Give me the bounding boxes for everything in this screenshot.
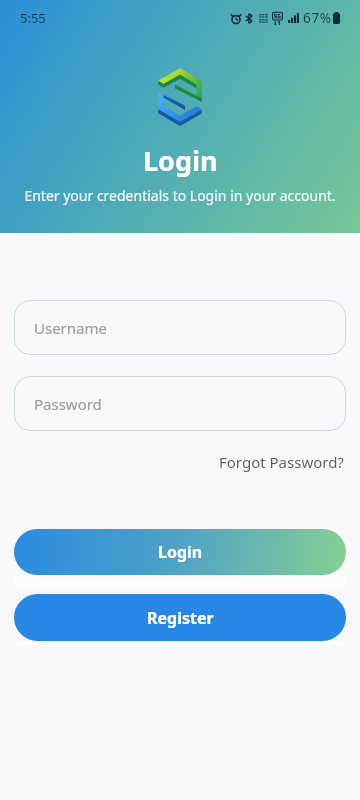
button[interactable]: Login xyxy=(14,529,346,575)
staticText: Username xyxy=(34,318,107,338)
staticText: Forgot Password? xyxy=(219,452,344,472)
staticText: 67% xyxy=(303,9,332,27)
button[interactable]: Register xyxy=(14,594,346,641)
staticText: Login xyxy=(158,541,203,563)
button[interactable]: Username xyxy=(14,300,346,355)
staticText: Login xyxy=(143,142,218,179)
button[interactable]: Forgot Password? xyxy=(217,448,346,476)
staticText: Register xyxy=(147,607,214,629)
staticText: Enter your credentials to Login in your … xyxy=(24,186,336,205)
staticText: Password xyxy=(34,394,102,414)
staticText: 5:55 xyxy=(20,9,46,27)
button[interactable]: Password xyxy=(14,376,346,431)
